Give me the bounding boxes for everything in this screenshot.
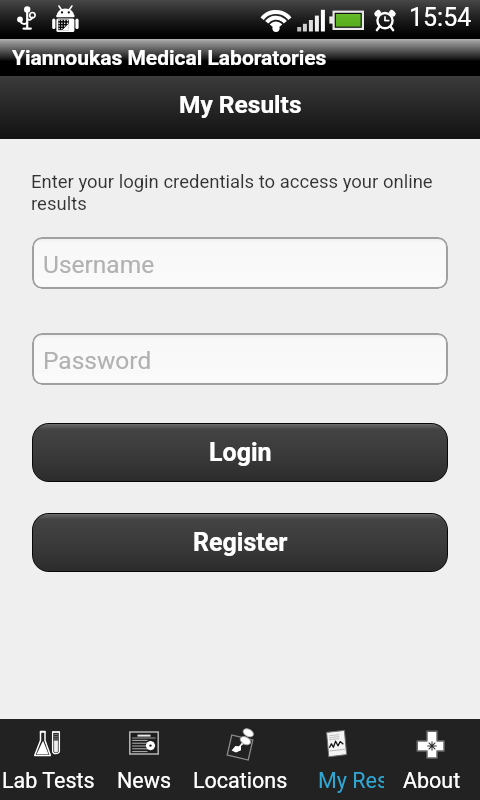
staticText: Login [209, 438, 272, 467]
button[interactable]: Locations [192, 719, 288, 800]
staticText: 15:54 [409, 3, 472, 32]
staticText: About [403, 768, 461, 793]
button[interactable]: Register [33, 514, 447, 571]
staticText: My Results [318, 768, 384, 793]
staticText: My Results [179, 90, 302, 119]
staticText: Yiannoukas Medical Laboratories [12, 46, 327, 71]
button[interactable]: News [96, 719, 192, 800]
staticText: Password [43, 346, 152, 375]
staticText: Lab Tests [2, 768, 95, 793]
button[interactable]: Password [32, 333, 448, 385]
button[interactable]: Lab Tests [0, 719, 96, 800]
staticText: News [117, 768, 171, 793]
button[interactable]: My Results [288, 719, 384, 800]
staticText: Username [43, 250, 155, 279]
staticText: Locations [193, 768, 288, 793]
button[interactable]: Login [33, 424, 447, 481]
button[interactable]: Username [32, 237, 448, 289]
staticText: Enter your login credentials to access y… [31, 171, 447, 215]
staticText: Register [193, 528, 288, 557]
button[interactable]: About [384, 719, 480, 800]
